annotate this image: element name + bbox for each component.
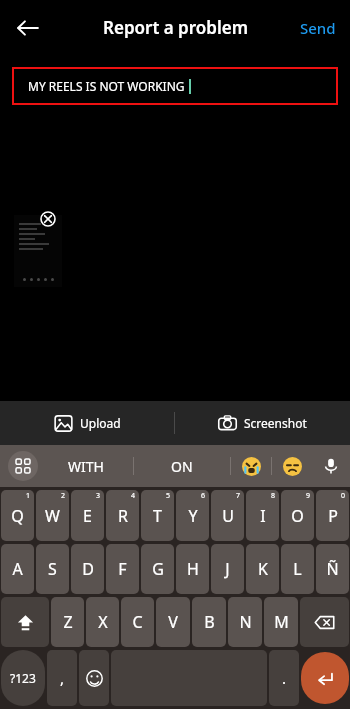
button[interactable]: Backspace [300, 597, 349, 647]
button[interactable]: ON [134, 445, 230, 487]
staticText: 2 [61, 491, 66, 501]
button[interactable]: ?123 [1, 650, 45, 706]
staticText: 6 [201, 491, 206, 501]
staticText: 5 [166, 491, 171, 501]
staticText: B [204, 611, 215, 633]
staticText: ON [171, 457, 193, 476]
button[interactable]: D [71, 544, 104, 594]
staticText: T [153, 505, 162, 527]
button[interactable]: R [106, 490, 139, 541]
button[interactable]: U [211, 490, 244, 541]
button[interactable]: Remove attachment [38, 209, 58, 229]
staticText: G [152, 558, 164, 580]
staticText: Screenshot [244, 415, 307, 431]
button[interactable]: I [246, 490, 279, 541]
button[interactable]: Voice input [312, 445, 350, 487]
button[interactable]: S [36, 544, 69, 594]
staticText: Z [63, 611, 73, 633]
button[interactable] [272, 445, 312, 487]
button[interactable]: E [71, 490, 104, 541]
staticText: . [282, 668, 287, 688]
button[interactable]: . [269, 650, 299, 706]
staticText: U [222, 505, 234, 527]
staticText: Report a problem [103, 16, 248, 39]
button[interactable]: Emoji [79, 650, 109, 706]
staticText: 7 [236, 491, 241, 501]
button[interactable]: Screenshot [175, 401, 350, 445]
button[interactable]: X [86, 597, 119, 647]
button[interactable]: J [211, 544, 244, 594]
button[interactable]: W [36, 490, 69, 541]
staticText: M [274, 611, 289, 633]
staticText: O [291, 505, 304, 527]
button[interactable]: A [1, 544, 34, 594]
staticText: 1 [26, 491, 31, 501]
staticText: X [98, 611, 108, 633]
staticText: Y [188, 505, 198, 527]
button[interactable]: Send [296, 12, 340, 44]
button[interactable]: Upload [0, 401, 174, 445]
staticText: 9 [306, 491, 311, 501]
staticText: L [293, 558, 302, 580]
button[interactable]: Enter [301, 652, 349, 704]
button[interactable]: O [281, 490, 314, 541]
staticText: C [132, 611, 143, 633]
button[interactable]: N [228, 597, 262, 647]
button[interactable]: Apps [8, 451, 38, 481]
button[interactable] [231, 445, 271, 487]
staticText: Upload [80, 415, 121, 431]
staticText: W [45, 505, 60, 527]
button[interactable]: F [106, 544, 139, 594]
staticText: 4 [131, 491, 136, 501]
button[interactable]: V [156, 597, 190, 647]
button[interactable]: Ñ [316, 544, 349, 594]
staticText: H [187, 558, 199, 580]
button[interactable]: WITH [38, 445, 133, 487]
button[interactable]: C [121, 597, 154, 647]
staticText: K [258, 558, 268, 580]
staticText: ?123 [10, 670, 36, 686]
staticText: 8 [271, 491, 276, 501]
staticText: P [328, 505, 338, 527]
staticText: Q [11, 505, 24, 527]
staticText: N [239, 611, 252, 633]
staticText: V [168, 611, 178, 633]
button[interactable]: M [264, 597, 298, 647]
staticText: R [118, 505, 128, 527]
button[interactable]: P [316, 490, 349, 541]
button[interactable] [14, 215, 62, 287]
button[interactable]: Q [1, 490, 34, 541]
staticText: MY REELS IS NOT WORKING [28, 78, 185, 94]
button[interactable]: B [192, 597, 226, 647]
staticText: I [260, 505, 266, 527]
button[interactable]: G [141, 544, 174, 594]
staticText: , [60, 668, 65, 688]
button[interactable]: Shift [1, 597, 49, 647]
button[interactable]: Y [176, 490, 209, 541]
button[interactable]: , [47, 650, 77, 706]
button[interactable]: L [281, 544, 314, 594]
button[interactable]: Back [8, 8, 48, 48]
staticText: WITH [68, 457, 104, 476]
staticText: E [83, 505, 92, 527]
button[interactable]: K [246, 544, 279, 594]
button[interactable]: MY REELS IS NOT WORKING [12, 67, 338, 105]
staticText: Ñ [326, 558, 339, 580]
staticText: A [12, 558, 23, 580]
staticText: S [48, 558, 57, 580]
button[interactable]: H [176, 544, 209, 594]
button[interactable]: T [141, 490, 174, 541]
staticText: D [82, 558, 94, 580]
staticText: J [225, 558, 230, 580]
staticText: 3 [96, 491, 101, 501]
staticText: F [118, 558, 127, 580]
button[interactable]: Z [51, 597, 84, 647]
staticText: Send [300, 18, 336, 38]
staticText: 0 [341, 491, 346, 501]
